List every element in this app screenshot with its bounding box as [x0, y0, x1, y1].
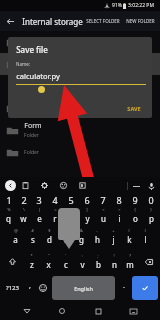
button[interactable]: Clipboard: [16, 177, 35, 194]
button[interactable]: &: [73, 224, 89, 249]
staticText: l: [144, 234, 147, 245]
button[interactable]: 2: [16, 194, 31, 224]
button[interactable]: 4: [47, 194, 63, 224]
button[interactable]: SELECT FOLDER: [83, 14, 123, 28]
button[interactable]: :: [74, 249, 90, 274]
staticText: }: [150, 207, 152, 212]
button[interactable]: Back: [0, 11, 20, 31]
button[interactable]: English: [52, 276, 115, 300]
button[interactable]: .: [117, 276, 130, 300]
staticText: Form: [24, 121, 42, 131]
staticText: English: [74, 285, 93, 292]
staticText: v: [80, 259, 85, 270]
staticText: n: [112, 259, 117, 270]
button[interactable]: ): [137, 224, 153, 249]
button[interactable]: ;: [90, 249, 106, 274]
staticText: ,: [29, 281, 31, 291]
staticText: r: [53, 213, 57, 224]
staticText: 5: [68, 194, 74, 206]
button[interactable]: 1: [1, 194, 16, 224]
staticText: 8: [116, 194, 122, 206]
button[interactable]: ?: [122, 249, 138, 274]
button[interactable]: @: [7, 224, 24, 249]
staticText: *: [30, 253, 33, 258]
button[interactable]: 3: [31, 194, 47, 224]
staticText: x: [46, 259, 51, 270]
button[interactable]: ?123: [2, 276, 23, 300]
button[interactable]: ,: [23, 276, 36, 300]
button[interactable]: Emoji: [36, 276, 50, 300]
button[interactable]: Enter: [132, 276, 158, 300]
staticText: f: [64, 234, 67, 245]
staticText: i: [118, 213, 121, 224]
staticText: <: [102, 207, 105, 212]
staticText: Call Recordings: [24, 55, 75, 65]
button[interactable]: More options: [128, 178, 144, 194]
button[interactable]: !: [106, 249, 122, 274]
staticText: Name:: [16, 61, 30, 67]
button[interactable]: Back: [18, 302, 36, 320]
button[interactable]: Shift: [1, 249, 23, 274]
button[interactable]: Voice input: [144, 178, 158, 194]
staticText: (: [128, 228, 130, 233]
button[interactable]: ": [40, 249, 57, 274]
button[interactable]: 0: [143, 194, 159, 224]
staticText: a: [13, 234, 18, 245]
staticText: ?123: [6, 284, 19, 292]
staticText: [: [70, 207, 72, 212]
button[interactable]: Settings: [35, 177, 54, 194]
button[interactable]: Hide keyboard: [124, 302, 142, 320]
button[interactable]: Folder: [0, 31, 160, 53]
button[interactable]: SAVE: [122, 102, 146, 115]
button[interactable]: #: [24, 224, 41, 249]
staticText: q: [6, 213, 11, 224]
staticText: k: [127, 234, 132, 245]
staticText: fooViewShare: [24, 99, 69, 109]
button[interactable]: (: [121, 224, 137, 249]
button[interactable]: 5: [63, 194, 79, 224]
button[interactable]: Stickers: [54, 177, 73, 194]
button[interactable]: Recents: [89, 302, 107, 320]
button[interactable]: Text editing: [73, 177, 92, 194]
button[interactable]: Call Recordings: [0, 53, 160, 75]
button[interactable]: *: [23, 249, 40, 274]
staticText: s: [31, 234, 35, 245]
button[interactable]: Expand toolbar: [5, 180, 16, 191]
staticText: $: [48, 228, 51, 233]
staticText: 6: [84, 194, 90, 206]
button[interactable]: 9: [127, 194, 143, 224]
button[interactable]: NEW FOLDER: [123, 14, 158, 28]
staticText: Internal storage: [22, 16, 83, 27]
button[interactable]: _: [57, 224, 73, 249]
button[interactable]: +: [105, 224, 121, 249]
staticText: {: [134, 207, 136, 212]
staticText: Folder: [24, 132, 39, 139]
staticText: %: [7, 207, 11, 212]
staticText: Folder: [24, 149, 39, 156]
staticText: b: [96, 259, 101, 270]
button[interactable]: -: [89, 224, 105, 249]
staticText: ': [65, 253, 66, 258]
staticText: m: [126, 259, 134, 270]
staticText: e: [37, 213, 42, 224]
button[interactable]: 6: [79, 194, 95, 224]
button[interactable]: 7: [95, 194, 111, 224]
staticText: .: [123, 281, 125, 291]
staticText: -: [96, 228, 98, 233]
staticText: 3:02:22 PM: [128, 2, 154, 9]
staticText: calculator.py: [16, 71, 60, 81]
button[interactable]: $: [41, 224, 57, 249]
button[interactable]: Folder: [0, 141, 160, 163]
button[interactable]: fooViewShare: [0, 97, 160, 119]
button[interactable]: Backspace: [138, 249, 159, 274]
button[interactable]: Home: [53, 302, 71, 320]
button[interactable]: 8: [111, 194, 127, 224]
staticText: ": [48, 253, 50, 258]
button[interactable]: Form: [0, 119, 160, 141]
staticText: c: [64, 259, 68, 270]
staticText: 3: [36, 194, 42, 206]
button[interactable]: ': [57, 249, 74, 274]
